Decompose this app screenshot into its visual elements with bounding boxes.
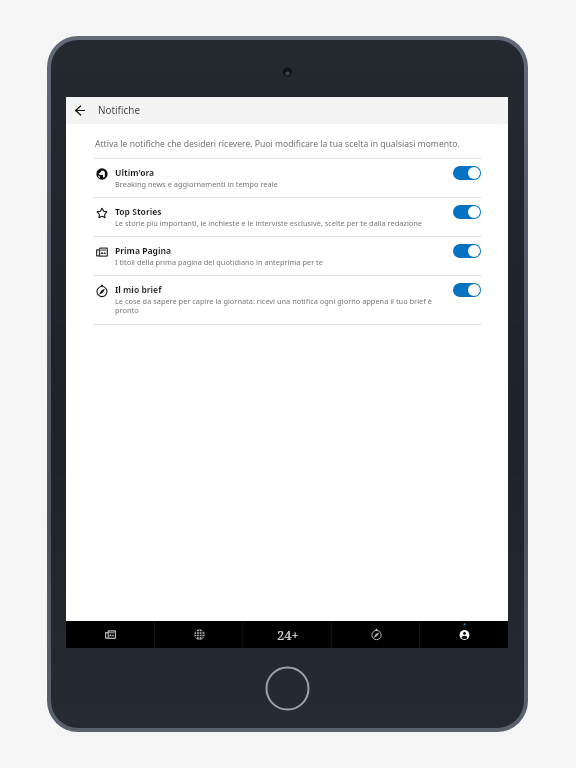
staticText: 24+ — [277, 626, 299, 644]
staticText: I titoli della prima pagina del quotidia… — [115, 257, 323, 267]
button[interactable]: Attiva Il mio brief — [453, 283, 481, 297]
button[interactable]: Attiva Prima Pagina — [453, 244, 481, 258]
staticText: Le storie più importanti, le inchieste e… — [115, 218, 423, 228]
staticText: Il mio brief — [115, 284, 162, 296]
staticText: Prima Pagina — [115, 245, 172, 257]
button[interactable]: Ultim'ora — [66, 159, 508, 197]
button[interactable]: 24+ — [244, 621, 332, 648]
button[interactable]: Indietro — [66, 97, 93, 124]
button[interactable]: Top Stories — [66, 198, 508, 236]
staticText: Notifiche — [98, 103, 141, 116]
button[interactable]: Notizie — [66, 621, 155, 648]
staticText: Attiva le notifiche che desideri ricever… — [95, 138, 460, 150]
button[interactable]: Account — [420, 621, 508, 648]
staticText: Breaking news e aggiornamenti in tempo r… — [115, 179, 278, 189]
button[interactable]: Prima Pagina — [66, 237, 508, 275]
staticText: Le cose da sapere per capire la giornata… — [115, 296, 447, 316]
button[interactable]: Il mio brief — [66, 276, 508, 324]
button[interactable]: Attiva Top Stories — [453, 205, 481, 219]
staticText: Top Stories — [115, 206, 162, 218]
button[interactable]: Attiva Ultim'ora — [453, 166, 481, 180]
button[interactable]: Mondo — [155, 621, 244, 648]
button[interactable]: Esplora — [332, 621, 420, 648]
staticText: Ultim'ora — [115, 167, 155, 179]
